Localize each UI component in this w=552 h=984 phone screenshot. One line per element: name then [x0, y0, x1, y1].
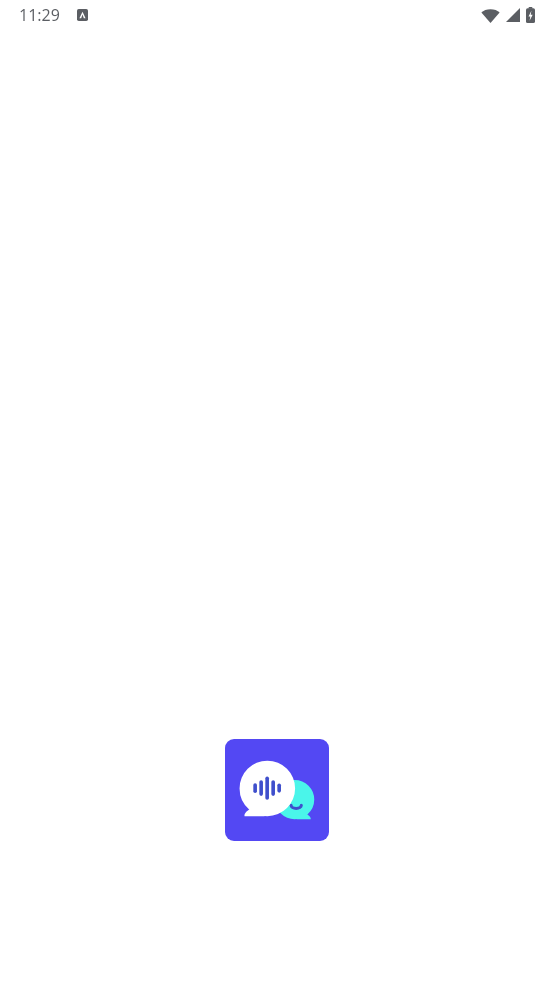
button[interactable]: App logo	[225, 739, 329, 841]
staticText: 11:29	[19, 4, 60, 26]
